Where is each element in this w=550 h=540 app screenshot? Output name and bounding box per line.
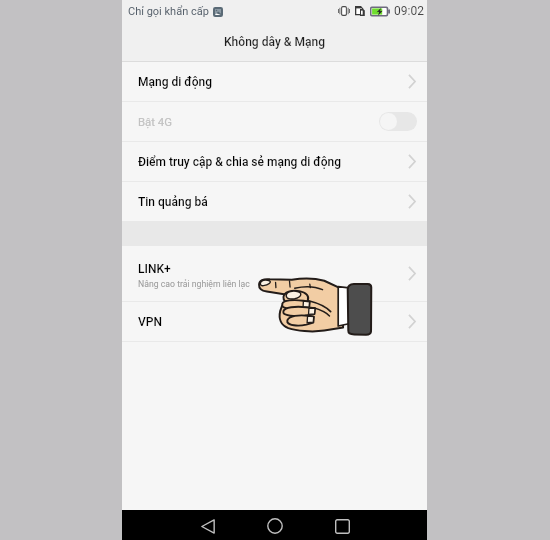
staticText: Mạng di động [138, 75, 213, 89]
button[interactable]: VPN [122, 302, 427, 341]
staticText: VPN [138, 315, 162, 329]
button[interactable]: Back [180, 511, 235, 540]
button[interactable]: Điểm truy cập & chia sẻ mạng di động [122, 142, 427, 181]
button[interactable]: Recent apps [315, 511, 370, 540]
button[interactable]: Home [247, 511, 302, 540]
button[interactable]: Tin quảng bá [122, 182, 427, 221]
staticText: Bật 4G [138, 115, 379, 128]
staticText: Nâng cao trải nghiệm liên lạc [138, 279, 250, 289]
button[interactable]: Mạng di động [122, 62, 427, 101]
staticText: Điểm truy cập & chia sẻ mạng di động [138, 155, 341, 169]
button[interactable]: Bật 4G [122, 102, 427, 141]
staticText: LINK+ [138, 262, 171, 276]
staticText: 09:02 [394, 4, 424, 18]
button[interactable]: LINK+ [122, 246, 427, 301]
button[interactable]: Bật 4G toggle [379, 112, 417, 131]
staticText: Tin quảng bá [138, 195, 208, 209]
staticText: Không dây & Mạng [224, 35, 326, 49]
staticText: Chỉ gọi khẩn cấp [128, 5, 209, 18]
